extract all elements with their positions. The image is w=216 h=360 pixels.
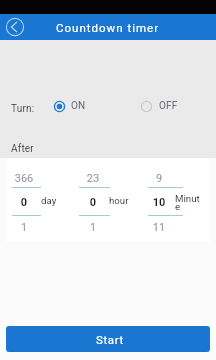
staticText: 1 (12, 221, 36, 234)
staticText: day (41, 195, 61, 206)
button[interactable] (79, 159, 110, 242)
staticText: Start (96, 333, 124, 346)
staticText: Turn: (11, 103, 35, 115)
button[interactable] (12, 159, 41, 242)
staticText: After (11, 143, 34, 155)
staticText: 0 (81, 196, 105, 209)
staticText: OFF (159, 100, 178, 112)
staticText: 23 (81, 172, 105, 185)
staticText: 366 (12, 172, 36, 185)
button[interactable]: Back (5, 17, 25, 37)
button[interactable] (148, 159, 183, 242)
staticText: hour (109, 195, 133, 206)
button[interactable]: ON (53, 98, 86, 114)
staticText: 0 (12, 196, 36, 209)
button[interactable]: Start (6, 326, 210, 352)
staticText: 11 (147, 221, 171, 234)
button[interactable]: OFF (140, 98, 178, 114)
staticText: 10 (147, 196, 171, 209)
staticText: ON (71, 100, 86, 112)
staticText: 1 (81, 221, 105, 234)
staticText: 9 (147, 172, 171, 185)
staticText: Minute (175, 193, 200, 212)
staticText: Countdown timer (56, 21, 160, 34)
